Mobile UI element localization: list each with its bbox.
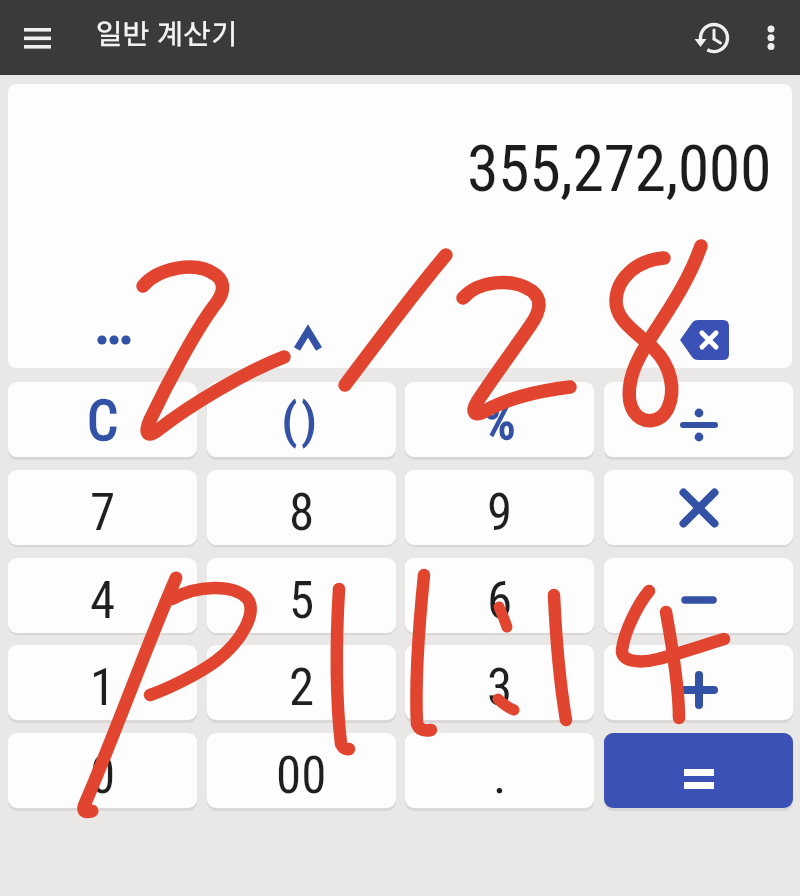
button[interactable]: 8	[207, 470, 396, 545]
staticText: 355,272,000	[467, 132, 772, 207]
button[interactable]: %	[405, 382, 594, 457]
staticText: 7	[90, 483, 116, 543]
button[interactable]: 9	[405, 470, 594, 545]
staticText: .	[493, 746, 507, 806]
button[interactable]	[672, 314, 738, 368]
staticText: 3	[487, 658, 513, 718]
staticText: 2	[289, 658, 315, 718]
button[interactable]: 6	[405, 558, 594, 633]
staticText: 8	[289, 483, 315, 543]
button[interactable]	[752, 18, 792, 58]
button[interactable]	[604, 382, 793, 457]
button[interactable]: 00	[207, 733, 396, 808]
button[interactable]	[84, 322, 144, 358]
staticText: 0	[90, 746, 116, 806]
button[interactable]	[604, 470, 793, 545]
staticText: 4	[90, 571, 116, 631]
staticText: %	[483, 392, 516, 452]
button[interactable]	[14, 27, 62, 53]
staticText: 1	[90, 658, 116, 718]
button[interactable]: 2	[207, 645, 396, 720]
button[interactable]: .	[405, 733, 594, 808]
staticText: 6	[487, 571, 513, 631]
button[interactable]: 3	[405, 645, 594, 720]
staticText: 9	[487, 483, 513, 543]
staticText: 00	[276, 746, 327, 806]
button[interactable]	[694, 18, 734, 58]
button[interactable]	[604, 645, 793, 720]
button[interactable]: ()	[207, 382, 396, 457]
button[interactable]: 0	[8, 733, 197, 808]
staticText: ()	[282, 393, 322, 448]
button[interactable]: 5	[207, 558, 396, 633]
button[interactable]	[604, 733, 793, 808]
button[interactable]: 1	[8, 645, 197, 720]
button[interactable]: C	[8, 382, 197, 457]
staticText: C	[87, 389, 119, 453]
button[interactable]: 4	[8, 558, 197, 633]
staticText: 5	[289, 571, 315, 631]
button[interactable]: 7	[8, 470, 197, 545]
button[interactable]	[286, 320, 330, 360]
button[interactable]	[604, 558, 793, 633]
staticText: 일반 계산기	[95, 22, 239, 50]
